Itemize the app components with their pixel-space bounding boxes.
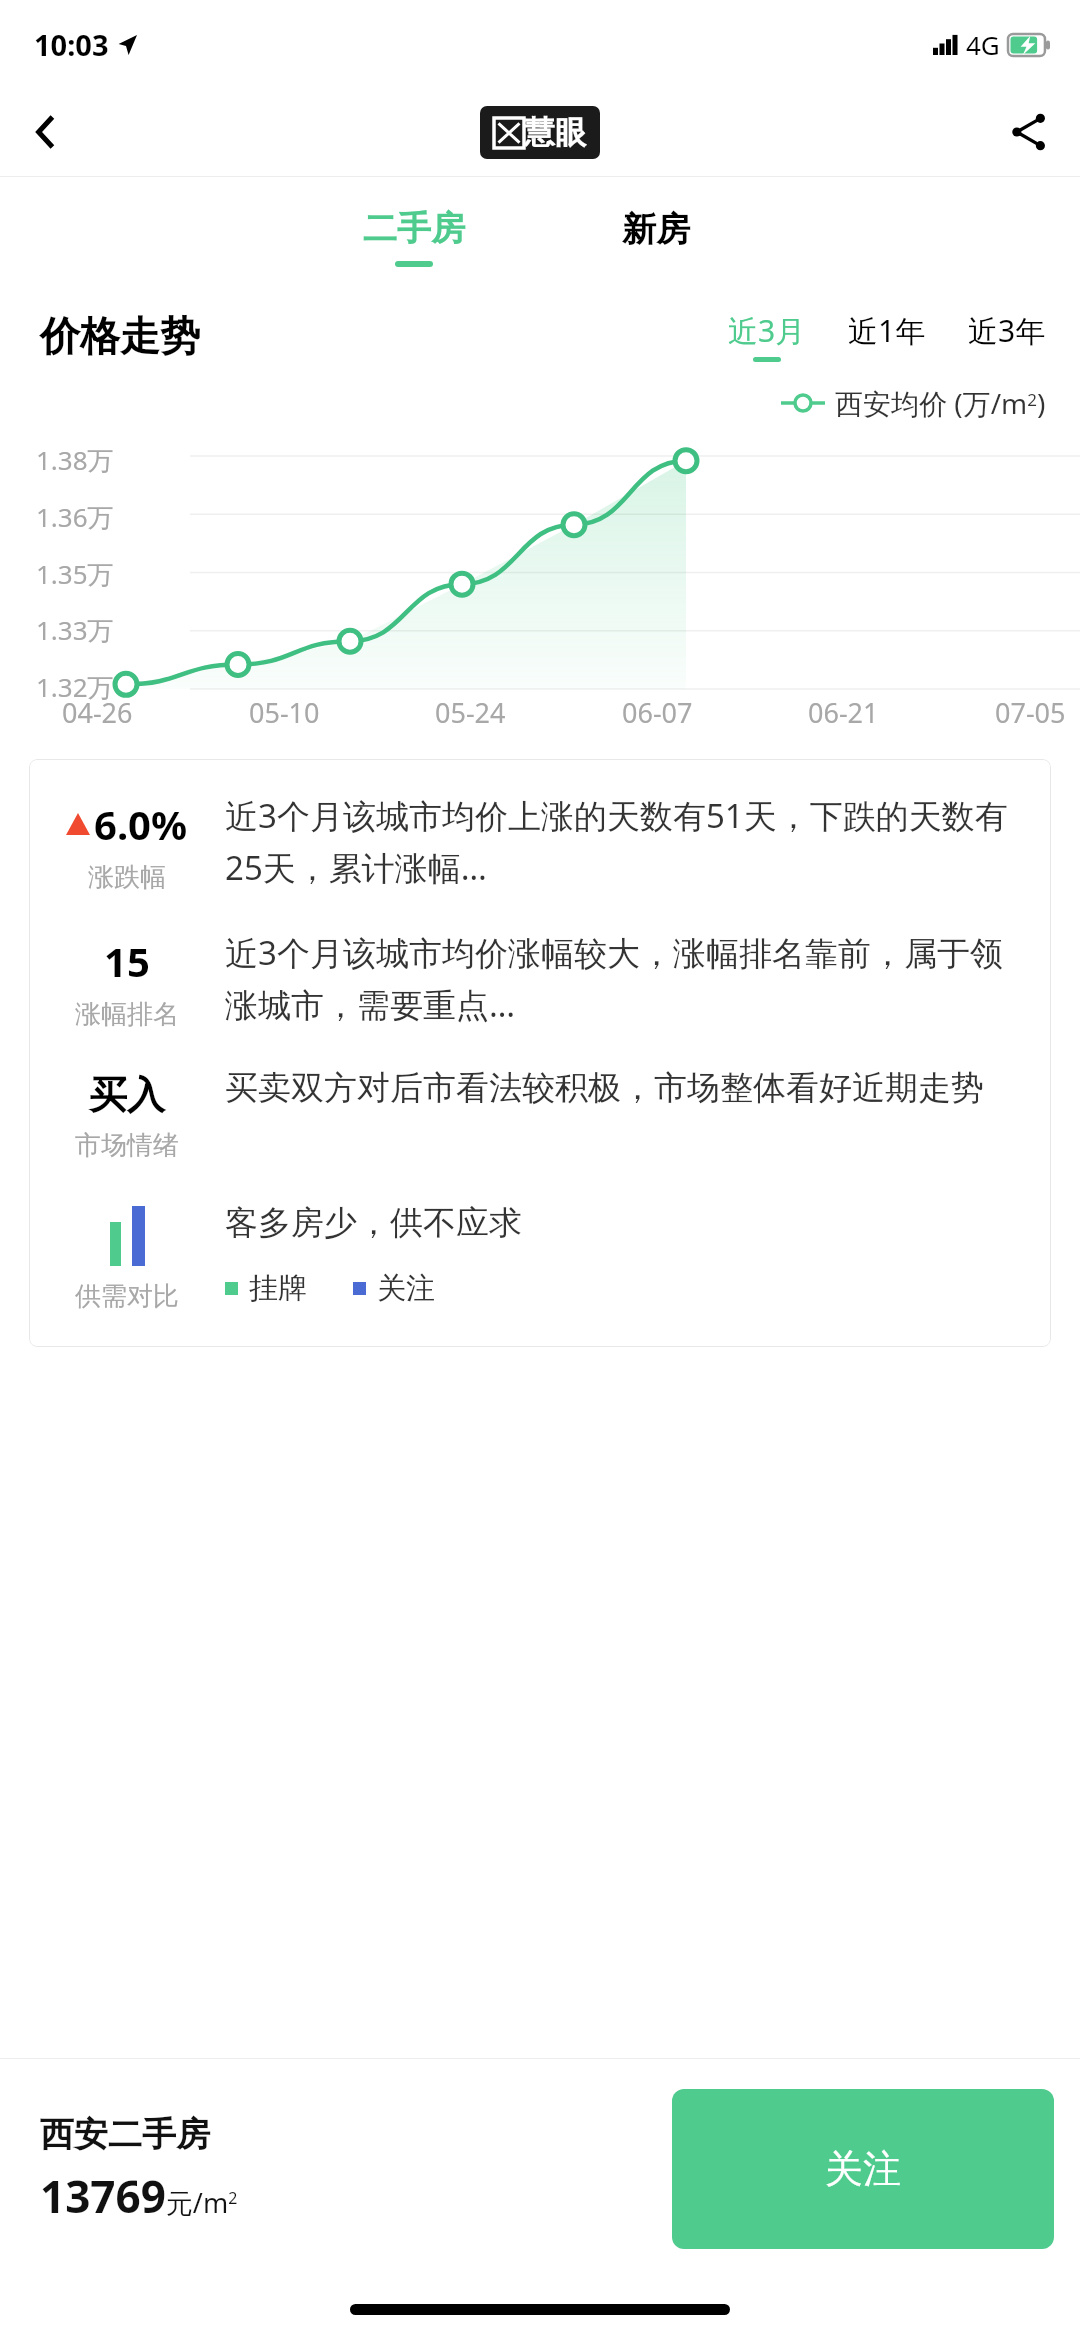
staticText: 近3月 <box>728 310 806 351</box>
button[interactable]: 近1年 <box>848 310 926 351</box>
staticText: 07-05 <box>995 694 1066 731</box>
staticText: 04-26 <box>62 694 133 731</box>
staticText: 涨跌幅 <box>88 861 166 894</box>
staticText: 4G <box>966 27 1000 62</box>
staticText: 10:03 <box>34 25 109 64</box>
staticText: 客多房少，供不应求 <box>225 1202 522 1244</box>
staticText: 1.35万 <box>36 556 114 592</box>
staticText: 06-21 <box>808 694 879 731</box>
staticText: 05-10 <box>249 694 320 731</box>
staticText: 近3年 <box>968 310 1046 351</box>
staticText: 关注 <box>377 1270 435 1307</box>
button[interactable]: Back <box>14 99 80 165</box>
button[interactable]: 关注 <box>672 2089 1054 2249</box>
staticText: 1.38万 <box>36 442 114 478</box>
button[interactable]: Share <box>996 99 1062 165</box>
button[interactable]: 新房 <box>622 208 690 251</box>
button[interactable]: 二手房 <box>363 207 465 267</box>
button[interactable]: 近3月 <box>728 310 806 362</box>
staticText: 近3个月该城市均价上涨的天数有51天，下跌的天数有25天，累计涨幅… <box>225 793 1029 890</box>
staticText: 挂牌 <box>249 1270 307 1307</box>
staticText: 05-24 <box>435 694 506 731</box>
staticText: 西安均价 (万/m2) <box>835 384 1046 422</box>
button[interactable]: 近3年 <box>968 310 1046 351</box>
staticText: 价格走势 <box>40 311 200 361</box>
staticText: 关注 <box>825 2145 901 2193</box>
staticText: 1.36万 <box>36 499 114 535</box>
staticText: 新房 <box>622 208 690 251</box>
staticText: 涨幅排名 <box>75 998 179 1031</box>
staticText: 买入 <box>89 1071 165 1119</box>
staticText: 13769元/m2 <box>40 2166 238 2226</box>
staticText: 15 <box>104 934 150 988</box>
staticText: 1.32万 <box>36 669 114 705</box>
staticText: 西安二手房 <box>40 2113 210 2156</box>
staticText: 二手房 <box>363 207 465 250</box>
staticText: 市场情绪 <box>75 1129 179 1162</box>
staticText: 1.33万 <box>36 612 114 648</box>
staticText: 近3个月该城市均价涨幅较大，涨幅排名靠前，属于领涨城市，需要重点… <box>225 930 1029 1027</box>
staticText: 慧眼 <box>524 113 586 152</box>
staticText: 6.0% <box>94 797 188 851</box>
staticText: 近1年 <box>848 310 926 351</box>
staticText: 买卖双方对后市看法较积极，市场整体看好近期走势 <box>225 1067 1029 1109</box>
staticText: 06-07 <box>622 694 693 731</box>
staticText: 供需对比 <box>75 1280 179 1313</box>
